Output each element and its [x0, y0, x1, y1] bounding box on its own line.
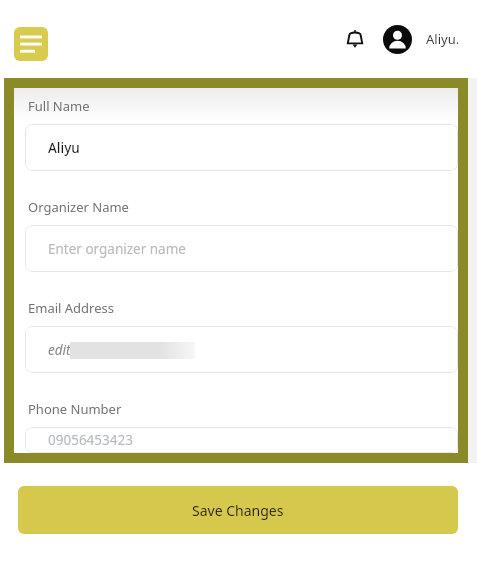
- button[interactable]: Account: [382, 24, 412, 54]
- staticText: Full Name: [28, 97, 90, 115]
- staticText: edit: [48, 341, 71, 359]
- staticText: 09056453423: [48, 431, 133, 449]
- button[interactable]: edit: [25, 326, 458, 373]
- button[interactable]: Save Changes: [18, 486, 458, 534]
- staticText: Save Changes: [192, 501, 284, 520]
- button[interactable]: Enter organizer name: [25, 225, 458, 272]
- staticText: Phone Number: [28, 400, 122, 418]
- staticText: Email Address: [28, 299, 114, 317]
- button[interactable]: 09056453423: [25, 427, 458, 453]
- staticText: Aliyu: [48, 139, 80, 157]
- button[interactable]: Open navigation menu: [14, 27, 48, 61]
- button[interactable]: Notifications: [340, 24, 370, 54]
- staticText: Aliyu.: [426, 30, 460, 48]
- staticText: Enter organizer name: [48, 240, 186, 258]
- button[interactable]: Aliyu: [25, 124, 458, 171]
- staticText: Organizer Name: [28, 198, 129, 216]
